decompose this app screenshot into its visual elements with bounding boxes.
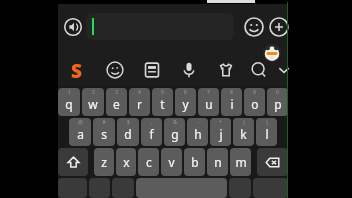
button[interactable]: 2 bbox=[82, 88, 104, 116]
staticText: 0 bbox=[276, 89, 279, 96]
staticText: u bbox=[205, 96, 213, 112]
button[interactable]: Emoji bbox=[242, 15, 266, 39]
staticText: @ bbox=[78, 119, 83, 126]
button[interactable]: - bbox=[187, 118, 208, 146]
button[interactable]: 1 bbox=[58, 88, 80, 116]
staticText: + bbox=[219, 119, 222, 126]
staticText: r bbox=[137, 96, 142, 112]
button[interactable]: Space bbox=[136, 178, 227, 198]
button[interactable]: Attach bbox=[267, 15, 291, 39]
button[interactable]: _ bbox=[141, 118, 162, 146]
button[interactable]: Stickers bbox=[103, 58, 127, 82]
button[interactable]: 8 bbox=[221, 88, 242, 116]
button[interactable]: Voice input bbox=[177, 58, 201, 82]
button[interactable]: ) bbox=[256, 118, 277, 146]
staticText: 2 bbox=[92, 89, 95, 96]
button[interactable]: Period bbox=[229, 178, 251, 198]
button[interactable]: $ bbox=[117, 118, 139, 146]
button[interactable]: @ bbox=[69, 118, 91, 146]
button[interactable]: Profile avatar bbox=[263, 44, 281, 62]
staticText: p bbox=[274, 96, 282, 112]
staticText: s bbox=[101, 126, 107, 142]
button[interactable]: 6 bbox=[175, 88, 196, 116]
staticText: # bbox=[102, 119, 106, 126]
button[interactable]: 5 bbox=[152, 88, 173, 116]
button[interactable]: Backspace bbox=[257, 148, 288, 176]
button[interactable]: c bbox=[138, 148, 159, 176]
staticText: q bbox=[65, 96, 73, 112]
staticText: 6 bbox=[184, 89, 187, 96]
staticText: _ bbox=[150, 119, 153, 126]
staticText: k bbox=[240, 126, 247, 142]
button[interactable] bbox=[86, 13, 234, 40]
staticText: w bbox=[88, 96, 98, 112]
button[interactable]: z bbox=[94, 148, 114, 176]
staticText: 4 bbox=[138, 89, 141, 96]
staticText: f bbox=[149, 126, 154, 142]
button[interactable]: Keyboard logo bbox=[64, 58, 88, 82]
button[interactable]: x bbox=[116, 148, 136, 176]
button[interactable]: m bbox=[230, 148, 251, 176]
button[interactable]: Search bbox=[247, 58, 271, 82]
button[interactable]: Language bbox=[112, 178, 134, 198]
staticText: c bbox=[146, 154, 152, 170]
button[interactable]: Sticker pack bbox=[214, 58, 238, 82]
staticText: t bbox=[160, 96, 165, 112]
staticText: n bbox=[214, 154, 222, 170]
staticText: v bbox=[168, 154, 175, 170]
button[interactable]: v bbox=[161, 148, 182, 176]
button[interactable]: Collapse bbox=[272, 58, 296, 82]
staticText: h bbox=[194, 126, 202, 142]
button[interactable]: 3 bbox=[106, 88, 127, 116]
staticText: d bbox=[124, 126, 132, 142]
staticText: z bbox=[101, 154, 107, 170]
staticText: 1 bbox=[68, 89, 71, 96]
staticText: 3 bbox=[115, 89, 118, 96]
button[interactable]: 0 bbox=[267, 88, 288, 116]
staticText: - bbox=[197, 119, 199, 126]
button[interactable]: & bbox=[164, 118, 185, 146]
staticText: ( bbox=[243, 119, 245, 126]
staticText: g bbox=[171, 126, 179, 142]
button[interactable]: 9 bbox=[244, 88, 265, 116]
button[interactable]: 7 bbox=[198, 88, 219, 116]
staticText: m bbox=[235, 154, 247, 170]
staticText: & bbox=[173, 119, 177, 126]
staticText: y bbox=[182, 96, 189, 112]
staticText: S bbox=[71, 58, 82, 82]
staticText: ) bbox=[266, 119, 268, 126]
button[interactable]: + bbox=[210, 118, 231, 146]
button[interactable]: Comma bbox=[89, 178, 110, 198]
staticText: 5 bbox=[161, 89, 164, 96]
staticText: b bbox=[191, 154, 199, 170]
button[interactable]: 4 bbox=[129, 88, 150, 116]
staticText: 8 bbox=[230, 89, 233, 96]
button[interactable]: Enter bbox=[253, 178, 288, 198]
staticText: o bbox=[251, 96, 259, 112]
staticText: i bbox=[230, 96, 234, 112]
staticText: $ bbox=[127, 119, 130, 126]
button[interactable]: Shift bbox=[58, 148, 88, 176]
button[interactable]: Voice message bbox=[62, 16, 84, 38]
staticText: l bbox=[265, 126, 269, 142]
button[interactable]: n bbox=[207, 148, 228, 176]
button[interactable]: # bbox=[93, 118, 115, 146]
staticText: j bbox=[219, 126, 223, 142]
button[interactable]: Symbols bbox=[58, 178, 87, 198]
staticText: x bbox=[123, 154, 130, 170]
staticText: 7 bbox=[207, 89, 210, 96]
button[interactable]: ( bbox=[233, 118, 254, 146]
staticText: a bbox=[77, 126, 84, 142]
staticText: e bbox=[113, 96, 120, 112]
button[interactable]: Clipboard bbox=[140, 58, 164, 82]
staticText: 9 bbox=[253, 89, 256, 96]
button[interactable]: b bbox=[184, 148, 205, 176]
